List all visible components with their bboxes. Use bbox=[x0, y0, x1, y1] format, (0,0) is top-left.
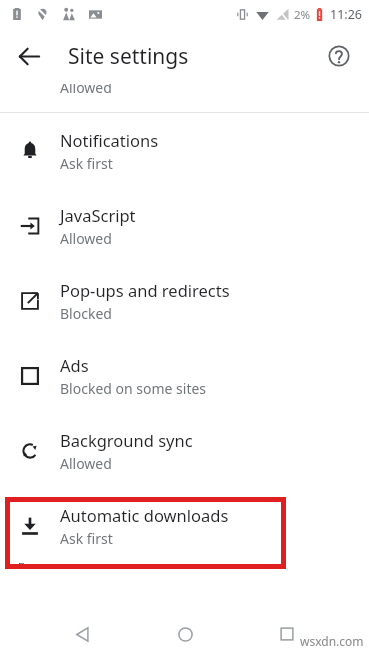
staticText: Blocked on some sites bbox=[60, 379, 207, 398]
staticText: Site settings bbox=[68, 42, 189, 71]
button[interactable]: Protected content bbox=[0, 563, 369, 568]
staticText: wsxdn.com bbox=[300, 633, 364, 649]
staticText: Automatic downloads bbox=[60, 504, 229, 526]
button[interactable]: Background sync bbox=[0, 413, 369, 488]
button[interactable]: JavaScript bbox=[0, 188, 369, 263]
staticText: Background sync bbox=[60, 429, 193, 451]
staticText: 2% bbox=[294, 7, 311, 23]
staticText: JavaScript bbox=[60, 204, 136, 226]
button[interactable]: Ads bbox=[0, 338, 369, 413]
button[interactable]: Sound bbox=[0, 84, 369, 112]
staticText: Protected content bbox=[60, 563, 199, 568]
button[interactable]: Back bbox=[61, 614, 103, 654]
button[interactable]: Pop-ups and redirects bbox=[0, 263, 369, 338]
staticText: Pop-ups and redirects bbox=[60, 279, 230, 301]
button[interactable]: Notifications bbox=[0, 113, 369, 188]
staticText: Ads bbox=[60, 354, 89, 376]
staticText: Ask first bbox=[60, 529, 113, 548]
button[interactable]: Recents bbox=[266, 614, 308, 654]
staticText: Allowed bbox=[60, 229, 112, 248]
staticText: 11:26 bbox=[330, 6, 362, 23]
staticText: Notifications bbox=[60, 129, 159, 151]
button[interactable]: Home bbox=[164, 614, 206, 654]
staticText: Allowed bbox=[60, 84, 112, 97]
staticText: Ask first bbox=[60, 154, 113, 173]
staticText: Allowed bbox=[60, 454, 112, 473]
button[interactable]: Back bbox=[7, 34, 51, 78]
button[interactable]: Automatic downloads bbox=[0, 488, 369, 563]
staticText: Blocked bbox=[60, 304, 112, 323]
button[interactable]: Help bbox=[317, 34, 361, 78]
